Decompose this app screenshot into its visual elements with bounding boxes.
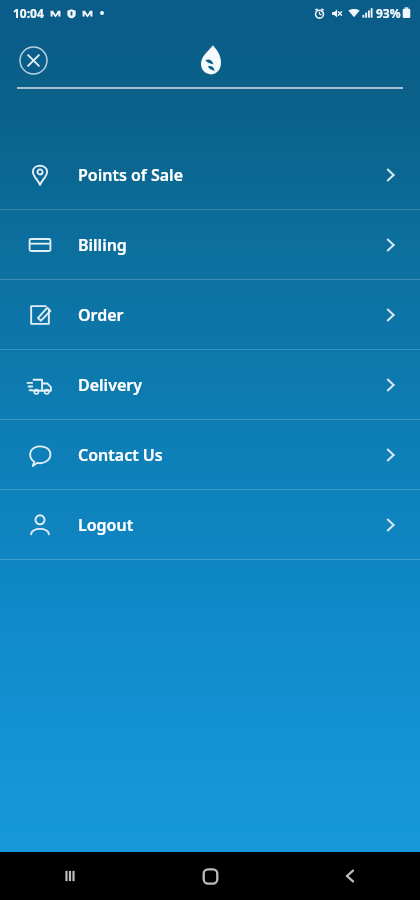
button[interactable]: Home xyxy=(140,852,280,900)
button[interactable]: Delivery xyxy=(0,350,420,419)
staticText: Contact Us xyxy=(78,444,163,466)
button[interactable]: Close xyxy=(18,45,48,75)
button[interactable]: Billing xyxy=(0,210,420,279)
staticText: Logout xyxy=(78,514,134,536)
button[interactable]: Back xyxy=(280,852,420,900)
staticText: Order xyxy=(78,304,124,326)
staticText: Points of Sale xyxy=(78,164,184,186)
staticText: Billing xyxy=(78,234,127,256)
button[interactable]: Recent apps xyxy=(0,852,140,900)
button[interactable]: Logout xyxy=(0,490,420,559)
staticText: 93% xyxy=(376,5,401,21)
staticText: 10:04 xyxy=(13,5,44,21)
staticText: Delivery xyxy=(78,374,142,396)
button[interactable]: Points of Sale xyxy=(0,140,420,209)
button[interactable]: Contact Us xyxy=(0,420,420,489)
button[interactable]: Order xyxy=(0,280,420,349)
